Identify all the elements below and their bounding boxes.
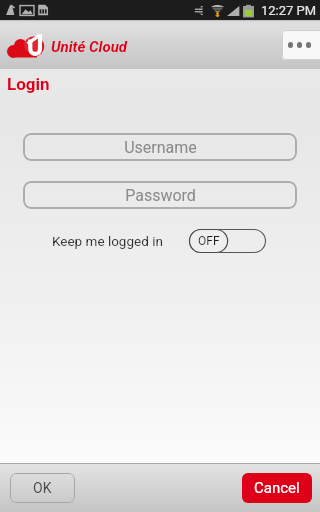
- button[interactable]: More options: [282, 30, 320, 60]
- button[interactable]: Username: [23, 133, 297, 161]
- button[interactable]: Password: [23, 181, 297, 209]
- staticText: OK: [33, 480, 52, 496]
- button[interactable]: Cancel: [242, 473, 312, 503]
- staticText: Cancel: [254, 479, 300, 497]
- staticText: Keep me logged in: [52, 233, 163, 249]
- button[interactable]: OK: [10, 473, 75, 503]
- staticText: Login: [7, 74, 50, 94]
- staticText: Unité Cloud: [51, 38, 127, 56]
- staticText: Username: [124, 138, 197, 157]
- staticText: 12:27 PM: [261, 3, 317, 18]
- staticText: Password: [125, 186, 196, 205]
- staticText: OFF: [198, 234, 220, 248]
- button[interactable]: Keep me logged in toggle, off: [189, 229, 266, 253]
